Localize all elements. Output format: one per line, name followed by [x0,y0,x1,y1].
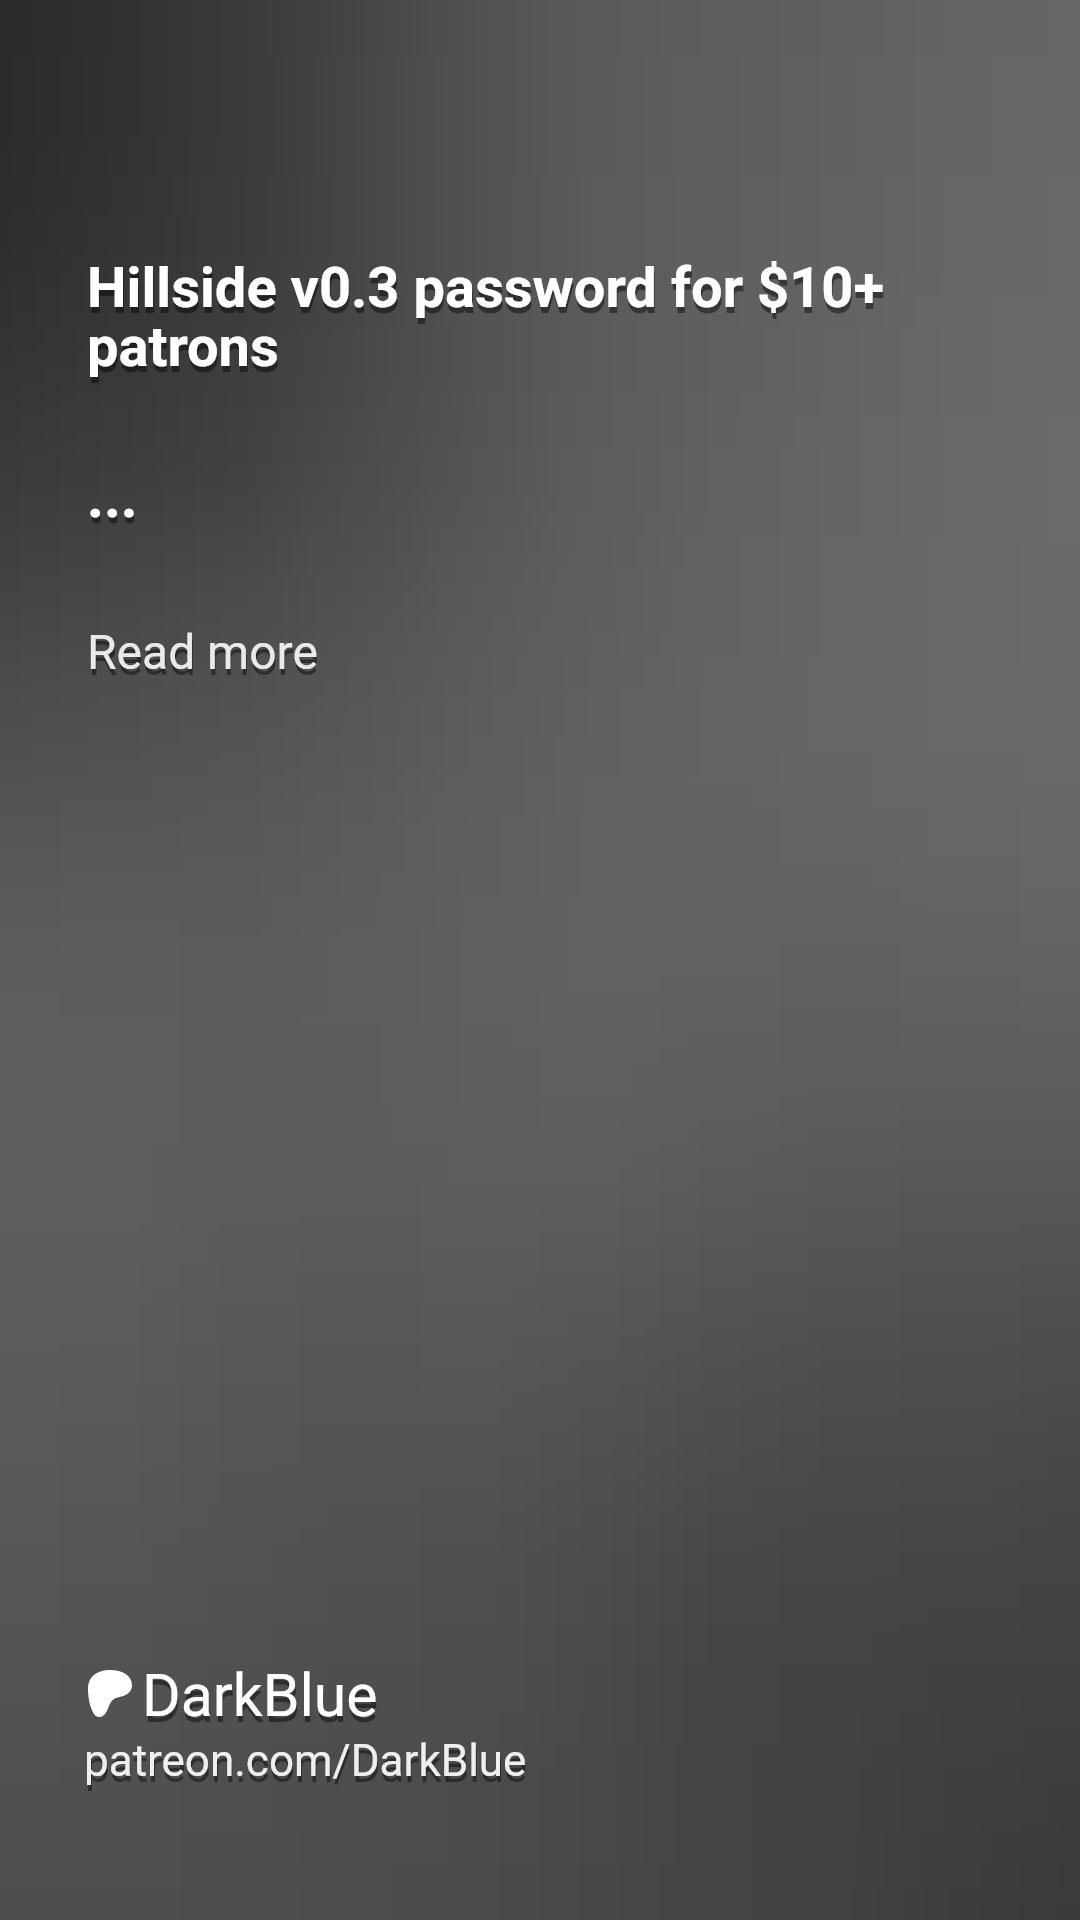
staticText: ... [87,463,138,531]
staticText: Read more [88,630,319,686]
staticText: Hillside v0.3 password for $10+ patrons [87,255,897,379]
other: Patreon [88,1670,132,1717]
staticText: patreon.com/DarkBlue [84,1735,527,1787]
staticText: Read more [87,624,318,680]
staticText: DarkBlue [143,1667,379,1736]
staticText: Hillside v0.3 password for $10+ patrons [88,261,898,385]
button[interactable]: Patreon [84,1661,378,1730]
staticText: patreon.com/DarkBlue [85,1741,528,1793]
button[interactable]: Read more [87,624,318,680]
staticText: DarkBlue [142,1661,378,1730]
staticText: ... [88,469,139,537]
